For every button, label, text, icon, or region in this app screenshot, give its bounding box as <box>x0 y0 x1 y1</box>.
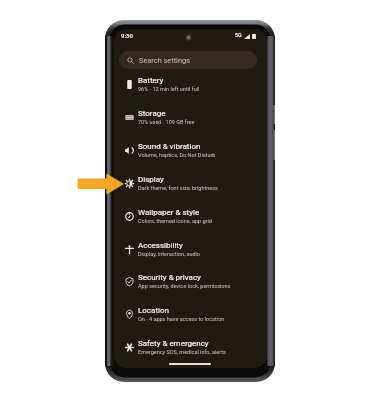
staticText: Volume, haptics, Do Not Disturb <box>138 152 216 158</box>
staticText: Display <box>138 175 164 184</box>
button[interactable]: Accessibility <box>114 231 267 264</box>
staticText: App security, device lock, permissions <box>138 283 231 289</box>
button[interactable]: Battery <box>114 66 267 99</box>
staticText: 9:30 <box>121 32 133 39</box>
staticText: Display, interaction, audio <box>138 251 200 257</box>
staticText: Security & privacy <box>138 273 201 282</box>
button[interactable]: Wallpaper & style <box>114 198 267 231</box>
staticText: Accessibility <box>138 241 183 250</box>
button[interactable]: Search settings <box>119 51 257 69</box>
staticText: Battery <box>138 76 164 85</box>
other: Pointer to Display <box>0 0 380 400</box>
button[interactable]: Security & privacy <box>114 263 267 296</box>
staticText: Storage <box>138 109 166 118</box>
staticText: On · 4 apps have access to location <box>138 316 225 322</box>
staticText: 5G <box>235 32 242 38</box>
staticText: Emergency SOS, medical info, alerts <box>138 349 226 355</box>
staticText: Search settings <box>139 56 190 65</box>
button[interactable]: Location <box>114 296 267 329</box>
button[interactable]: Safety & emergency <box>114 329 267 362</box>
staticText: Colors, themed icons, app grid <box>138 218 212 224</box>
staticText: Location <box>138 306 169 315</box>
staticText: 96% · 12 min left until full <box>138 86 200 92</box>
button[interactable]: Display <box>114 165 267 198</box>
button[interactable]: Storage <box>114 99 267 132</box>
staticText: Sound & vibration <box>138 142 201 151</box>
staticText: Dark theme, font size, brightness <box>138 185 218 191</box>
staticText: 70% used · 109 GB free <box>138 119 195 125</box>
staticText: Wallpaper & style <box>138 208 200 217</box>
staticText: Safety & emergency <box>138 339 209 348</box>
button[interactable]: Sound & vibration <box>114 132 267 165</box>
